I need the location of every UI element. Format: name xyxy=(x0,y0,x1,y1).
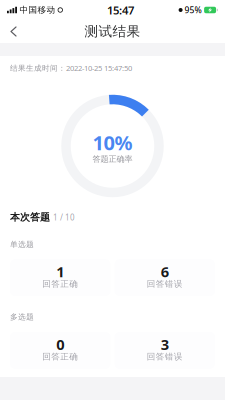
staticText: 10% xyxy=(92,129,132,156)
staticText: 回答正确 xyxy=(42,279,78,289)
staticText: 6 xyxy=(161,262,169,282)
staticText: 95% xyxy=(185,4,202,16)
button[interactable]: 6 xyxy=(114,259,215,296)
staticText: 1 / 10 xyxy=(53,212,75,223)
staticText: 0 xyxy=(56,334,64,354)
staticText: 中国移动 xyxy=(19,5,55,15)
staticText: 3 xyxy=(161,334,169,354)
staticText: 本次答题 xyxy=(10,211,50,223)
staticText: 回答正确 xyxy=(42,351,78,362)
staticText: 回答错误 xyxy=(147,279,183,289)
button[interactable]: 3 xyxy=(114,332,215,369)
staticText: 1 xyxy=(56,262,64,282)
staticText: 多选题 xyxy=(10,312,34,322)
staticText: 结果生成时间：2022-10-25 15:47:50 xyxy=(10,63,132,73)
staticText: 单选题 xyxy=(10,239,34,249)
staticText: 测试结果 xyxy=(84,23,140,40)
staticText: 回答错误 xyxy=(147,351,183,362)
button[interactable]: 1 xyxy=(10,259,110,296)
button[interactable]: 0 xyxy=(10,332,110,369)
staticText: 15:47 xyxy=(107,2,134,18)
button[interactable]: Back xyxy=(0,20,26,43)
staticText: 答题正确率 xyxy=(92,154,132,164)
